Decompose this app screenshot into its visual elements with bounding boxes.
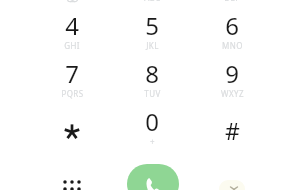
staticText: TUV bbox=[144, 88, 161, 99]
button[interactable]: Hide keypad bbox=[219, 180, 245, 190]
button[interactable]: 9 bbox=[192, 61, 272, 109]
staticText: PQRS bbox=[61, 88, 84, 99]
staticText: + bbox=[150, 136, 155, 147]
button[interactable]: 8 bbox=[112, 61, 192, 109]
staticText: 8 bbox=[145, 57, 159, 90]
staticText: # bbox=[225, 115, 240, 146]
staticText: ABC bbox=[144, 0, 161, 3]
staticText: 6 bbox=[225, 9, 239, 42]
staticText: MNO bbox=[222, 40, 243, 51]
staticText: 0 bbox=[145, 105, 159, 138]
staticText: 5 bbox=[145, 9, 159, 42]
button[interactable]: Keypad bbox=[52, 169, 92, 190]
staticText: DEF bbox=[224, 0, 240, 3]
staticText: GHI bbox=[64, 40, 80, 51]
button[interactable]: 5 bbox=[112, 13, 192, 61]
button[interactable]: 4 bbox=[32, 13, 112, 61]
button[interactable] bbox=[32, 109, 112, 157]
button[interactable]: # bbox=[192, 109, 272, 157]
staticText: 9 bbox=[225, 57, 239, 90]
button[interactable]: 6 bbox=[192, 13, 272, 61]
staticText: 4 bbox=[65, 9, 79, 42]
button[interactable]: Call bbox=[127, 164, 179, 190]
staticText: 7 bbox=[65, 57, 79, 90]
staticText: WXYZ bbox=[221, 88, 244, 99]
button[interactable]: 7 bbox=[32, 61, 112, 109]
button[interactable]: 0 bbox=[112, 109, 192, 157]
button[interactable]: 1 bbox=[32, 0, 112, 13]
staticText: JKL bbox=[146, 40, 159, 51]
